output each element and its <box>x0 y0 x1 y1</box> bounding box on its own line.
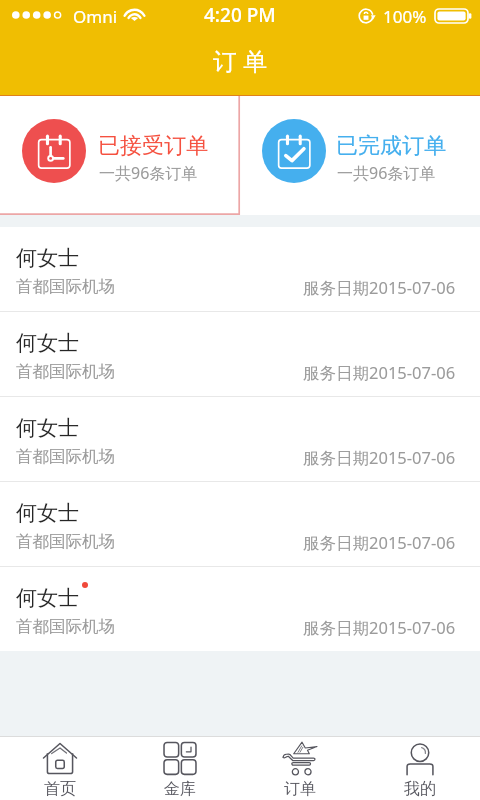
staticText: 何女士 <box>16 330 79 356</box>
staticText: 一共96条订单 <box>337 162 436 184</box>
staticText: 金库 <box>164 779 196 799</box>
staticText: 服务日期2015-07-06 <box>303 446 456 469</box>
button[interactable]: 已完成订单 <box>240 96 480 215</box>
button[interactable]: 何女士 <box>0 227 480 311</box>
button[interactable]: 何女士 <box>0 312 480 396</box>
staticText: 已接受订单 <box>98 132 208 160</box>
button[interactable]: 首页 <box>0 737 120 800</box>
staticText: 已完成订单 <box>336 132 446 160</box>
button[interactable]: 订单 <box>240 737 360 800</box>
staticText: 首都国际机场 <box>16 446 115 467</box>
button[interactable]: 何女士 <box>0 567 480 651</box>
staticText: 服务日期2015-07-06 <box>303 361 456 384</box>
staticText: 一共96条订单 <box>99 162 198 184</box>
button[interactable]: 金库 <box>120 737 240 800</box>
staticText: 何女士 <box>16 415 79 441</box>
staticText: 服务日期2015-07-06 <box>303 276 456 299</box>
staticText: 首页 <box>44 779 76 799</box>
staticText: 订单 <box>284 779 316 799</box>
button[interactable]: 何女士 <box>0 397 480 481</box>
staticText: 首都国际机场 <box>16 531 115 552</box>
button[interactable]: 已接受订单 <box>0 96 240 215</box>
button[interactable]: 我的 <box>360 737 480 800</box>
staticText: 何女士 <box>16 585 79 611</box>
staticText: 服务日期2015-07-06 <box>303 616 456 639</box>
staticText: 服务日期2015-07-06 <box>303 531 456 554</box>
staticText: 我的 <box>404 779 436 799</box>
staticText: 何女士 <box>16 500 79 526</box>
staticText: 4:20 PM <box>204 2 276 28</box>
staticText: 首都国际机场 <box>16 361 115 382</box>
button[interactable]: 何女士 <box>0 482 480 566</box>
staticText: 首都国际机场 <box>16 616 115 637</box>
staticText: 100% <box>383 5 427 28</box>
staticText: Omni <box>73 5 118 28</box>
staticText: 订 单 <box>213 44 268 77</box>
staticText: 首都国际机场 <box>16 276 115 297</box>
staticText: 何女士 <box>16 245 79 271</box>
